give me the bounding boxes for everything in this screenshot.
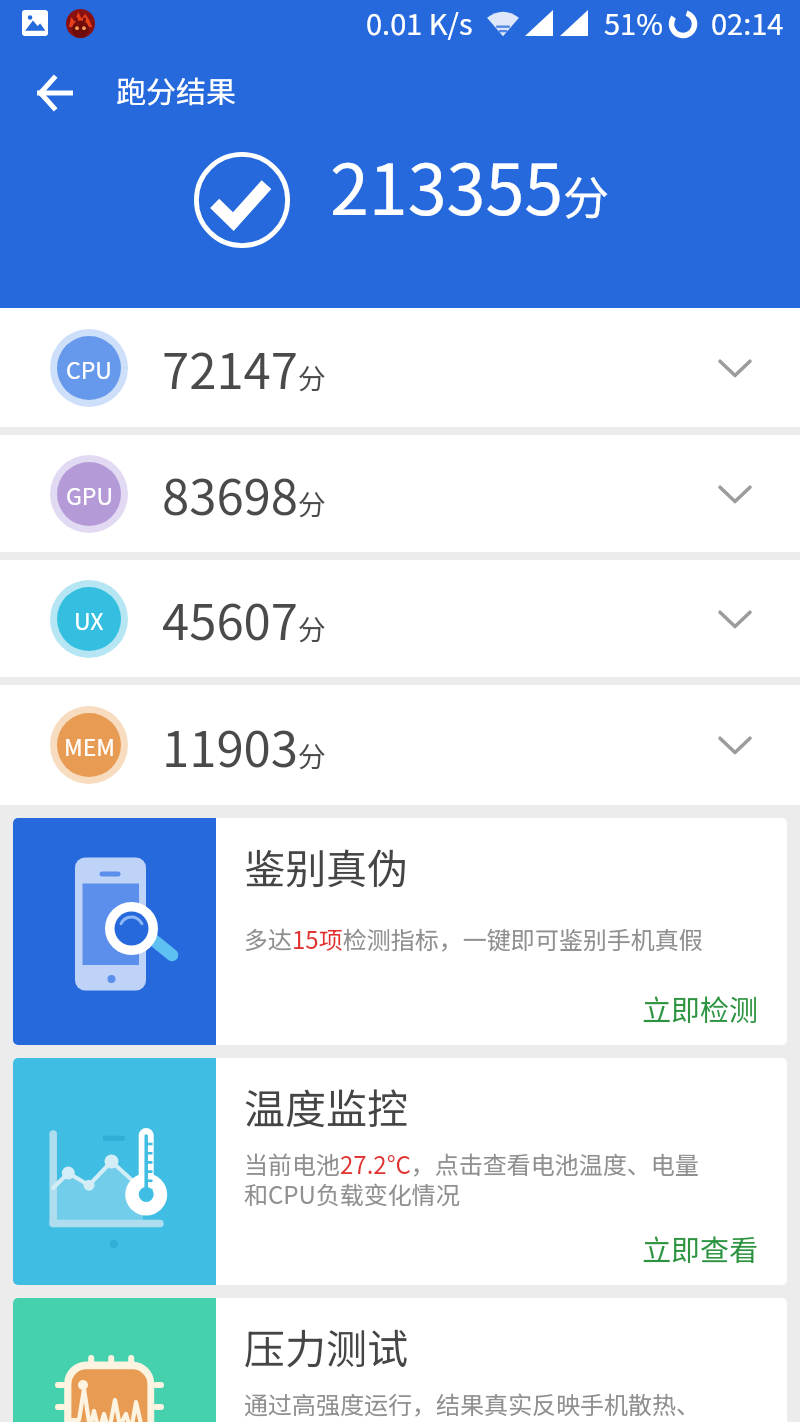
button[interactable]: Back [25, 63, 85, 123]
staticText: 温度监控 [244, 1076, 408, 1135]
staticText: 83698分 [162, 458, 326, 529]
button[interactable]: CPU [0, 308, 800, 427]
staticText: 02:14 [711, 1, 784, 43]
staticText: MEM [64, 729, 115, 762]
staticText: 压力测试 [244, 1316, 408, 1375]
staticText: 72147分 [162, 332, 326, 403]
button[interactable]: GPU [0, 435, 800, 552]
staticText: 跑分结果 [116, 68, 236, 111]
staticText: 45607分 [162, 583, 326, 654]
staticText: 多达15项检测指标，一键即可鉴别手机真假 [244, 921, 703, 956]
button[interactable]: 压力测试 [13, 1298, 787, 1422]
staticText: 通过高强度运行，结果真实反映手机散热、稳定性 [244, 1386, 718, 1422]
staticText: 11903分 [162, 710, 326, 781]
staticText: UX [74, 603, 104, 636]
button[interactable]: UX [0, 560, 800, 677]
button[interactable]: MEM [0, 685, 800, 805]
button[interactable]: 立即检测 [638, 983, 763, 1033]
staticText: 鉴别真伪 [244, 836, 408, 895]
staticText: 立即检测 [642, 987, 759, 1029]
staticText: 213355分 [330, 134, 610, 235]
button[interactable]: 鉴别真伪 [13, 818, 787, 1045]
staticText: 0.01 K/s [366, 1, 473, 43]
staticText: CPU [66, 352, 112, 385]
staticText: 立即查看 [642, 1227, 759, 1269]
staticText: GPU [66, 478, 113, 511]
staticText: 当前电池27.2°C，点击查看电池温度、电量和CPU负载变化情况 [244, 1146, 718, 1211]
button[interactable]: 温度监控 [13, 1058, 787, 1285]
button[interactable]: 立即查看 [638, 1223, 763, 1273]
staticText: 51% [604, 1, 663, 43]
